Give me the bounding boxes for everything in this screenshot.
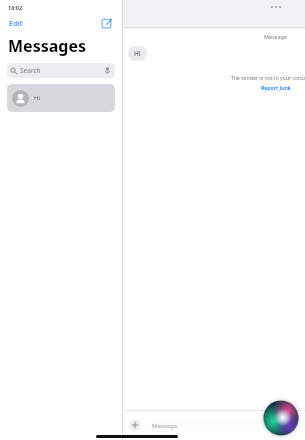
button[interactable]: Siri (261, 398, 301, 438)
staticText: Message (152, 422, 178, 430)
staticText: Report Junk (261, 84, 291, 91)
staticText: Hi (34, 94, 40, 102)
button[interactable]: Search (7, 63, 115, 78)
button[interactable]: New message (99, 15, 115, 31)
staticText: Hi (134, 49, 141, 58)
button[interactable]: Add attachment (129, 419, 141, 431)
button[interactable]: Hi (7, 84, 115, 112)
staticText: Edit (9, 18, 23, 28)
staticText: Messages (8, 35, 86, 57)
button[interactable]: Window controls (269, 4, 283, 10)
staticText: The sender is not in your contact list. (123, 74, 305, 81)
staticText: Search (20, 66, 41, 75)
button[interactable]: Report Junk (257, 83, 295, 92)
button[interactable]: Message (146, 419, 305, 432)
staticText: 10:02 (8, 4, 23, 11)
button[interactable]: Edit (7, 16, 25, 30)
staticText: Message (123, 33, 305, 40)
